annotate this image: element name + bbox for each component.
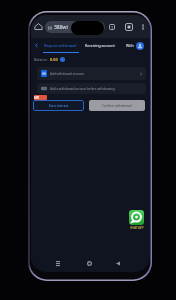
staticText: With [126, 43, 134, 48]
staticText: 388wi [54, 24, 68, 31]
button[interactable]: Bookmarks [125, 23, 133, 31]
button[interactable]: Home [34, 22, 43, 31]
staticText: Receiving account [85, 43, 115, 48]
button[interactable]: Home [83, 256, 95, 270]
staticText: Confirm withdrawal [102, 104, 132, 108]
button[interactable]: With [123, 38, 137, 53]
button[interactable]: Back [32, 38, 41, 53]
staticText: APR 2.00% [34, 96, 47, 100]
staticText: Add withdrawal account [50, 72, 84, 76]
staticText: 1 [111, 25, 114, 30]
button[interactable]: Request withdrawal [41, 38, 79, 53]
button[interactable]: Confirm withdrawal [89, 100, 145, 111]
button[interactable]: Account [136, 42, 144, 50]
button[interactable]: Recents [52, 256, 64, 270]
staticText: Request withdrawal [44, 43, 77, 48]
staticText: WHATSAPP [130, 226, 144, 230]
staticText: Earn interest [49, 104, 69, 108]
staticText: Add a withdrawal account before withdraw… [50, 87, 115, 91]
button[interactable]: Add a withdrawal account before withdraw… [37, 83, 146, 94]
button[interactable]: Back [112, 256, 124, 270]
staticText: 0.00 [50, 57, 58, 62]
button[interactable]: WhatsApp [129, 210, 147, 230]
button[interactable]: More options [139, 23, 147, 31]
staticText: Balance [34, 57, 48, 62]
button[interactable]: Tabs [109, 24, 115, 30]
button[interactable]: 388wi [45, 21, 105, 33]
button[interactable]: Earn interest [33, 100, 84, 111]
button[interactable]: Receiving account [82, 38, 118, 53]
button[interactable]: Add withdrawal account [37, 67, 146, 80]
